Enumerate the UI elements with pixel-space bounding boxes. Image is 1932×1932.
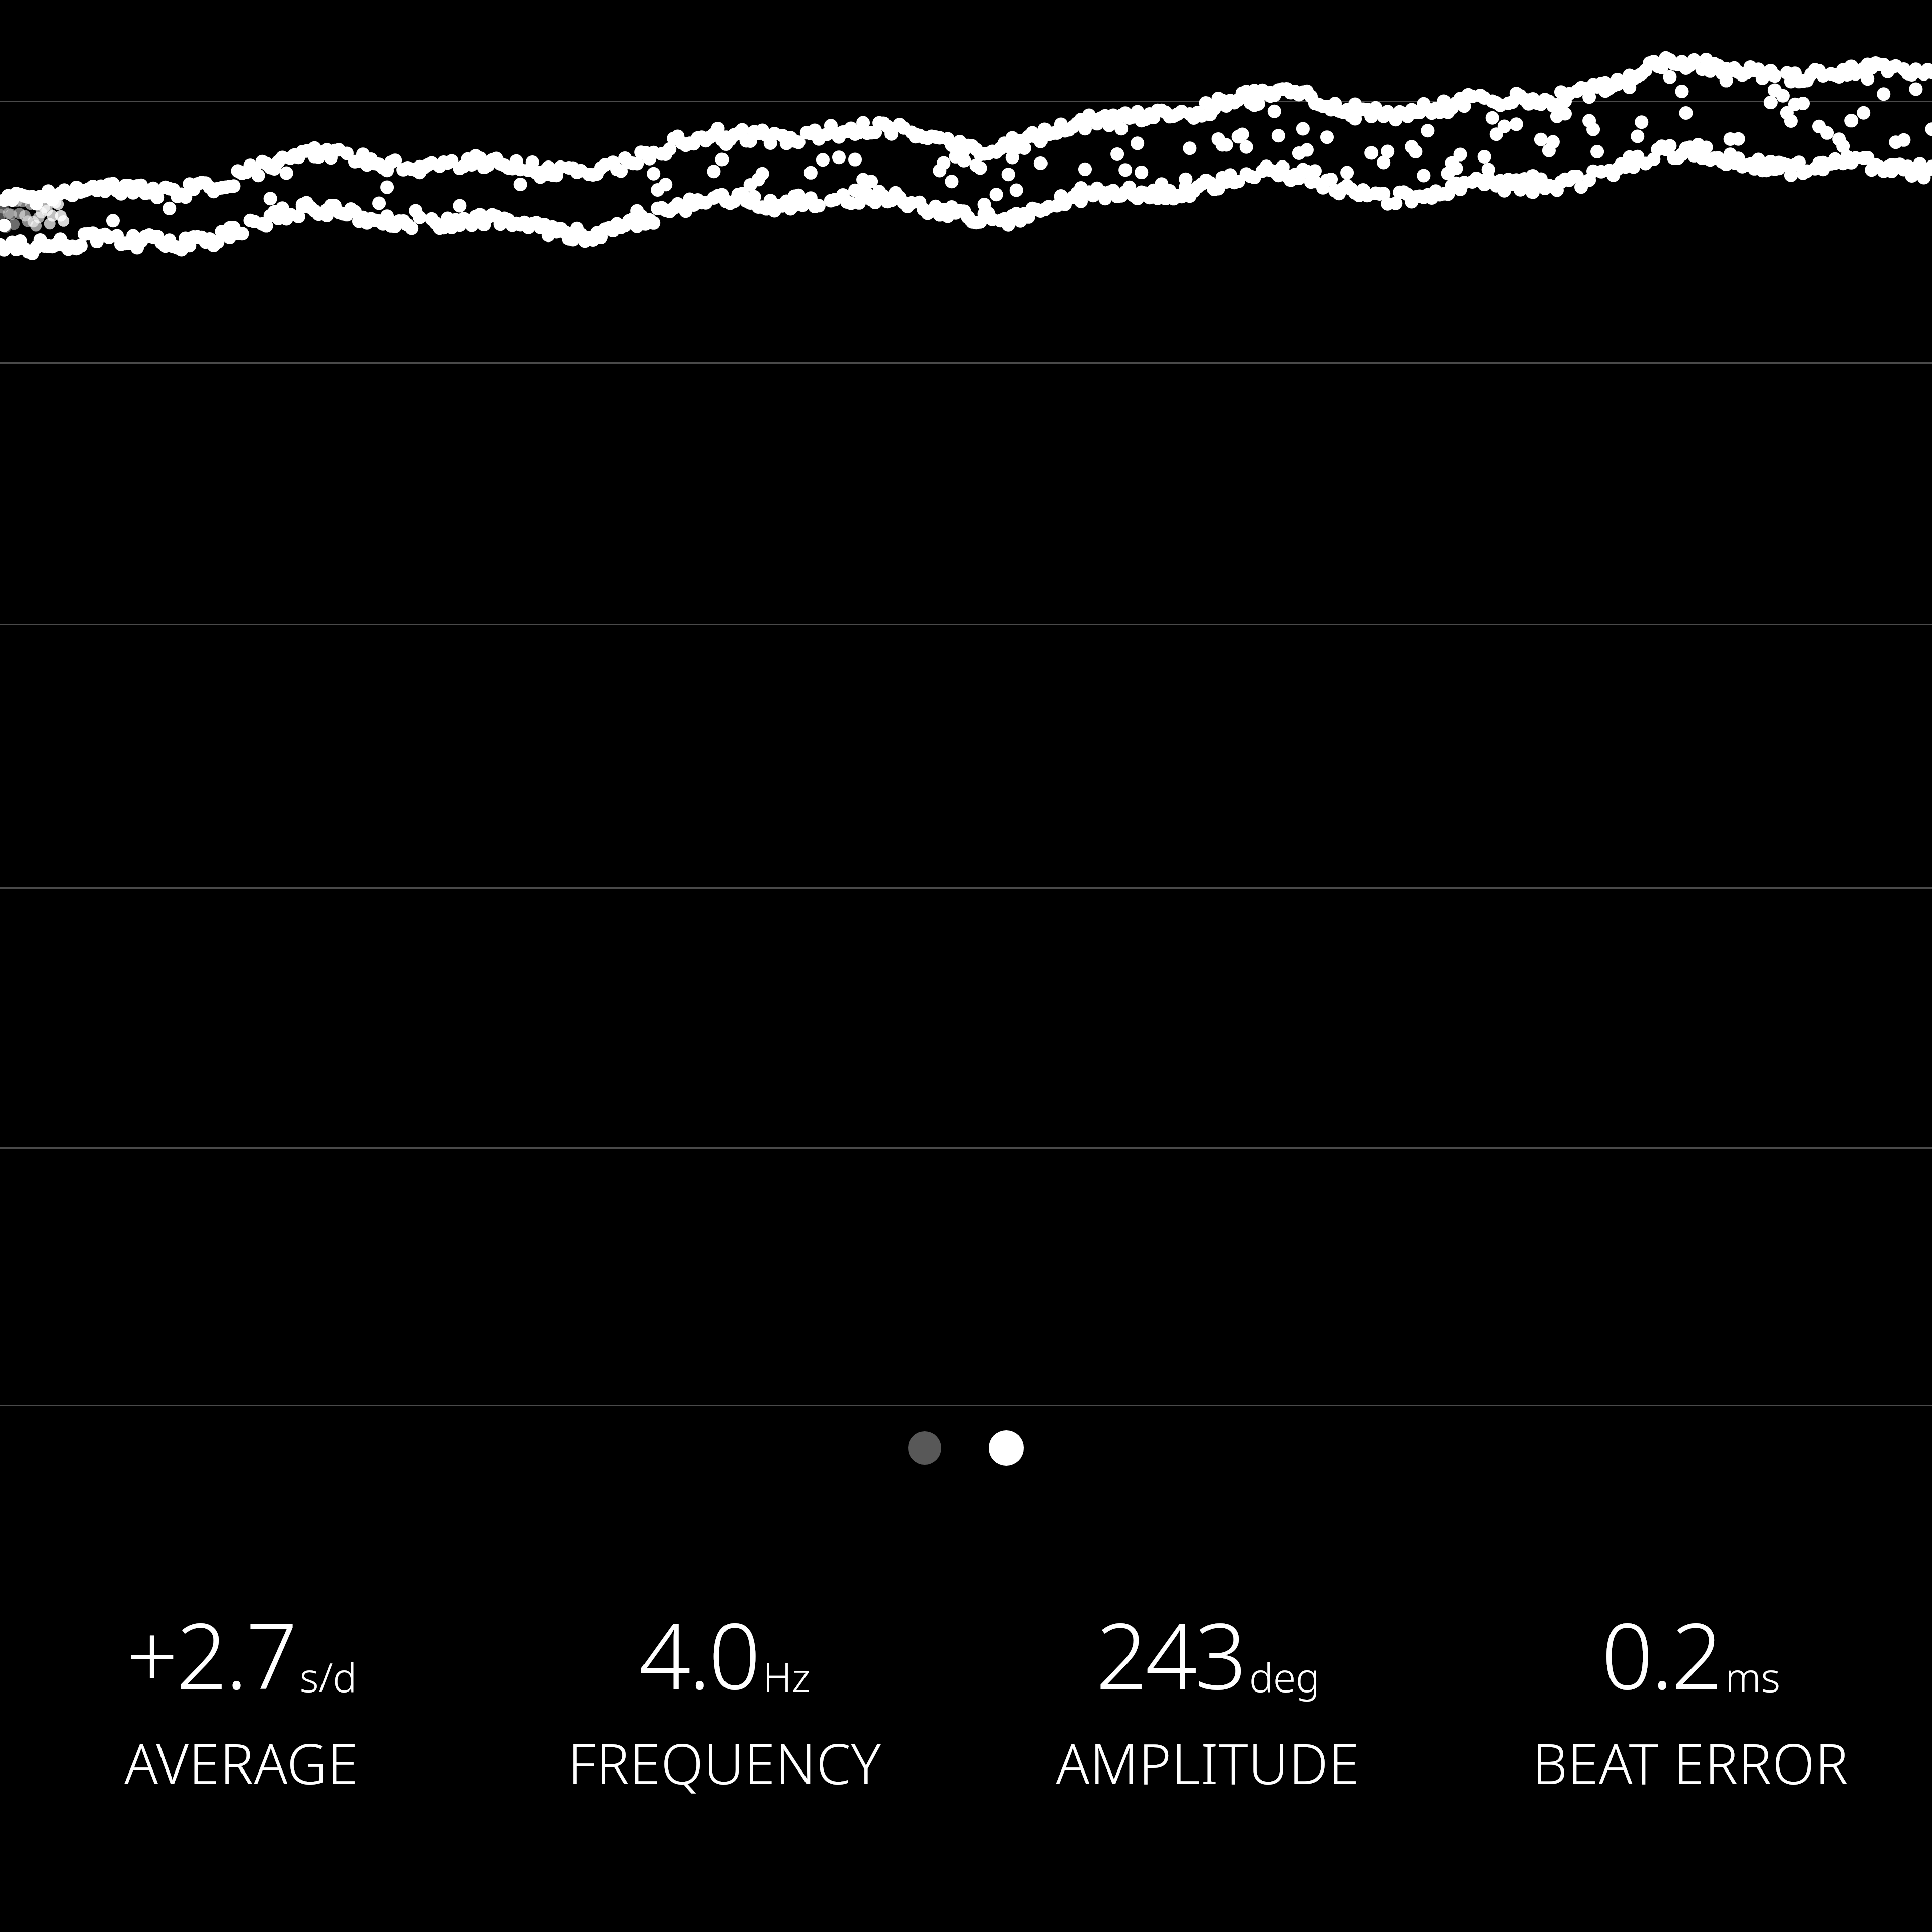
staticText: FREQUENCY <box>568 1725 881 1800</box>
button[interactable]: AVERAGE +2.7 s/d <box>0 1592 483 1800</box>
staticText: BEAT ERROR <box>1532 1725 1849 1800</box>
staticText: 4.0 <box>639 1592 759 1716</box>
staticText: 243 <box>1096 1592 1245 1716</box>
button[interactable]: BEAT ERROR 0.2 ms <box>1449 1592 1932 1800</box>
button[interactable]: AMPLITUDE 243 deg <box>966 1592 1449 1800</box>
staticText: Hz <box>763 1649 811 1704</box>
staticText: AMPLITUDE <box>1056 1725 1360 1800</box>
staticText: ms <box>1725 1649 1780 1704</box>
staticText: deg <box>1249 1649 1320 1704</box>
staticText: +2.7 <box>126 1592 296 1716</box>
button[interactable]: FREQUENCY 4.0 Hz <box>483 1592 966 1800</box>
staticText: AVERAGE <box>124 1725 359 1800</box>
button[interactable]: Rate trace graph <box>0 0 1932 1406</box>
staticText: s/d <box>300 1649 357 1704</box>
button[interactable]: Page 2 <box>989 1430 1024 1466</box>
staticText: 0.2 <box>1601 1592 1721 1716</box>
button[interactable]: Page 1 <box>908 1431 941 1465</box>
